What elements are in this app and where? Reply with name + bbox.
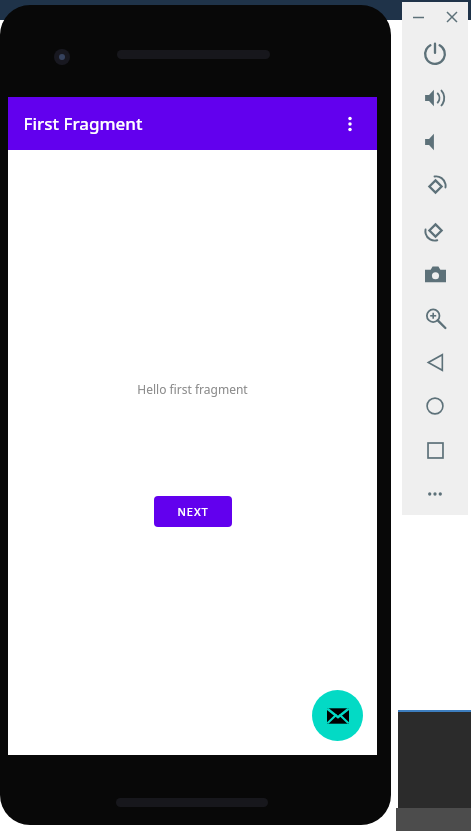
- button[interactable]: Close: [435, 2, 468, 32]
- button[interactable]: Send email: [312, 690, 363, 741]
- button[interactable]: Rotate right: [402, 208, 468, 252]
- button[interactable]: Overview: [402, 428, 468, 472]
- staticText: First Fragment: [23, 112, 143, 135]
- button[interactable]: Take screenshot: [402, 252, 468, 296]
- button[interactable]: Zoom: [402, 296, 468, 340]
- button[interactable]: Volume down: [402, 120, 468, 164]
- button[interactable]: Back: [402, 340, 468, 384]
- staticText: NEXT: [177, 504, 209, 519]
- button[interactable]: Power: [402, 32, 468, 76]
- button[interactable]: NEXT: [154, 496, 232, 527]
- button[interactable]: Volume up: [402, 76, 468, 120]
- button[interactable]: Home: [402, 384, 468, 428]
- button[interactable]: More: [402, 472, 468, 515]
- staticText: Hello first fragment: [137, 381, 248, 397]
- button[interactable]: Rotate left: [402, 164, 468, 208]
- button[interactable]: More options: [329, 103, 371, 145]
- button[interactable]: Minimize: [402, 2, 435, 32]
